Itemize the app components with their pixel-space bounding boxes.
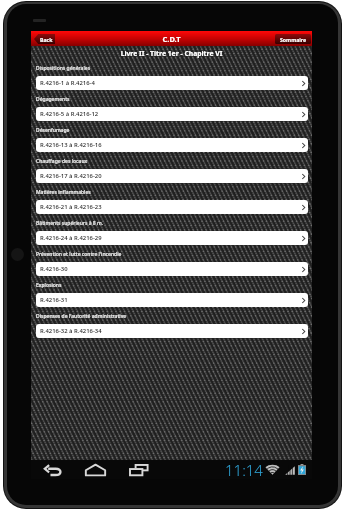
- button[interactable]: Sommaire: [275, 34, 311, 44]
- button[interactable]: R.4216-1 à R.4216-4: [36, 76, 308, 90]
- staticText: R.4216-5 à R.4216-12: [40, 110, 302, 118]
- staticText: Livre II - Titre 1er - Chapitre VI: [31, 49, 312, 58]
- staticText: R.4216-24 à R.4216-29: [40, 234, 302, 242]
- staticText: Prévention et lutte contre l'incendie: [36, 251, 122, 258]
- button[interactable]: Home: [85, 464, 106, 476]
- button[interactable]: Home: [11, 248, 24, 261]
- staticText: R.4216-31: [40, 296, 302, 304]
- staticText: R.4216-21 à R.4216-23: [40, 203, 302, 211]
- staticText: Désenfumage: [36, 127, 70, 134]
- button[interactable]: R.4216-13 à R.4216-16: [36, 138, 308, 152]
- staticText: Sommaire: [280, 36, 307, 43]
- button[interactable]: Back: [34, 34, 55, 44]
- button[interactable]: R.4216-30: [36, 262, 308, 276]
- button[interactable]: Recent apps: [129, 464, 149, 476]
- button[interactable]: R.4216-24 à R.4216-29: [36, 231, 308, 245]
- staticText: Bâtiments supérieurs à 8 m.: [36, 220, 104, 227]
- button[interactable]: R.4216-31: [36, 293, 308, 307]
- staticText: R.4216-32 à R.4216-34: [40, 327, 302, 335]
- button[interactable]: R.4216-32 à R.4216-34: [36, 324, 308, 338]
- staticText: Dégagements: [36, 96, 70, 103]
- staticText: Explosions: [36, 282, 62, 289]
- staticText: Back: [40, 36, 53, 43]
- staticText: C.D.T: [31, 34, 312, 44]
- button[interactable]: R.4216-17 à R.4216-20: [36, 169, 308, 183]
- staticText: 11:14: [225, 460, 263, 479]
- staticText: Dispositions générales: [36, 65, 91, 72]
- button[interactable]: R.4216-5 à R.4216-12: [36, 107, 308, 121]
- staticText: R.4216-30: [40, 265, 302, 273]
- button[interactable]: R.4216-21 à R.4216-23: [36, 200, 308, 214]
- staticText: R.4216-17 à R.4216-20: [40, 172, 302, 180]
- staticText: Chauffage des locaux: [36, 158, 88, 165]
- button[interactable]: Back: [44, 464, 63, 476]
- staticText: R.4216-13 à R.4216-16: [40, 141, 302, 149]
- staticText: Dispenses de l'autorité administrative: [36, 313, 127, 320]
- staticText: Matières inflammables: [36, 189, 91, 196]
- staticText: R.4216-1 à R.4216-4: [40, 79, 302, 87]
